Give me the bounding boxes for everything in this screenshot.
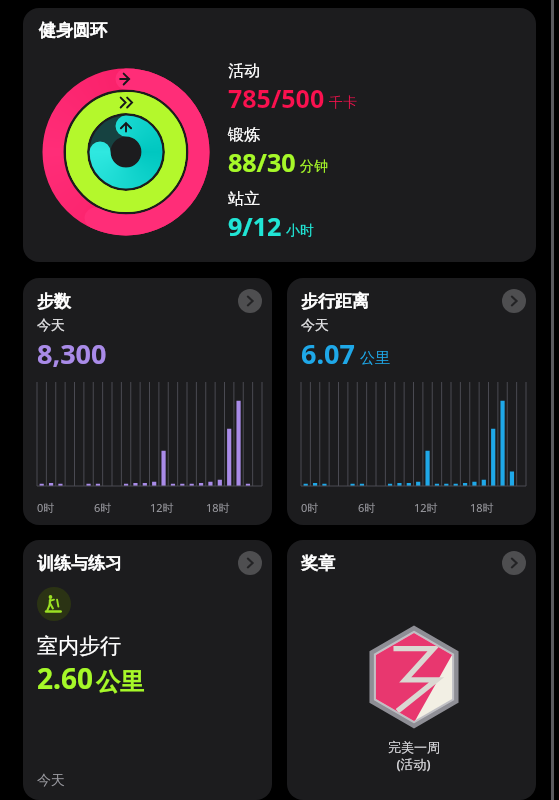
staticText: 6时 [358,500,376,515]
staticText: 活动 [228,61,260,81]
button[interactable]: 奖章 [502,551,526,575]
button[interactable]: 奖章 [287,540,536,800]
staticText: 18时 [206,500,230,515]
staticText: 9/12 [228,209,282,243]
staticText: 步行距离 [301,291,502,312]
staticText: (活动) [396,755,431,773]
staticText: 奖章 [301,553,502,574]
staticText: 12时 [150,500,174,515]
staticText: 0时 [37,500,55,515]
staticText: 12时 [414,500,438,515]
staticText: 站立 [228,189,260,209]
button[interactable]: 健身圆环 [23,8,536,262]
staticText: 小时 [286,222,314,240]
staticText: 6时 [94,500,112,515]
staticText: 分钟 [300,158,328,176]
staticText: 0时 [301,500,319,515]
staticText: 今天 [37,772,65,790]
button[interactable]: 步行距离 [287,278,536,525]
staticText: 完美一周 [388,739,440,755]
staticText: 88/30 [228,145,296,179]
button[interactable]: 步数 [23,278,272,525]
staticText: 训练与练习 [37,553,238,574]
staticText: 室内步行 [37,633,121,659]
staticText: 公里 [360,349,390,368]
staticText: 公里 [96,667,144,697]
staticText: 千卡 [329,94,357,112]
button[interactable]: 步行距离 [502,289,526,313]
button[interactable]: 训练与练习 [23,540,272,800]
staticText: 锻炼 [228,125,260,145]
staticText: 今天 [37,317,65,335]
staticText: 8,300 [37,335,107,372]
staticText: 785/500 [228,81,325,115]
staticText: 今天 [301,317,329,335]
staticText: 18时 [470,500,494,515]
staticText: 2.60 [37,659,93,697]
button[interactable]: 训练与练习 [238,551,262,575]
button[interactable]: 步数 [238,289,262,313]
staticText: 健身圆环 [39,20,107,41]
staticText: 步数 [37,291,238,312]
staticText: 6.07 [301,335,355,372]
